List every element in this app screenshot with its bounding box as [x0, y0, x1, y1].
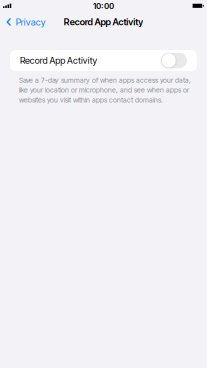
staticText: 10:00	[93, 1, 114, 11]
staticText: Save a 7-day summary of when apps access…	[19, 76, 191, 104]
staticText: Privacy	[16, 16, 46, 28]
button[interactable]: Record App Activity	[0, 50, 207, 71]
staticText: Record App Activity	[20, 55, 98, 66]
staticText: Record App Activity	[64, 16, 143, 27]
button[interactable]: Privacy	[0, 11, 52, 33]
